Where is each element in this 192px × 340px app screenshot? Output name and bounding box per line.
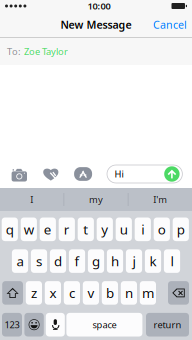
staticText: Zoe Taylor [24, 45, 68, 57]
button[interactable]: q [2, 217, 18, 241]
button[interactable]: g [88, 249, 104, 273]
button[interactable]: i [135, 217, 151, 241]
button[interactable]: t [78, 217, 94, 241]
button[interactable]: u [116, 217, 132, 241]
button[interactable]: x [45, 281, 61, 305]
staticText: To: [7, 45, 21, 57]
staticText: my [89, 193, 103, 206]
button[interactable]: o [154, 217, 170, 241]
staticText: g [92, 252, 100, 270]
button[interactable]: y [97, 217, 113, 241]
staticText: m [142, 284, 154, 302]
button[interactable]: space [66, 313, 142, 336]
button[interactable]: w [21, 217, 37, 241]
button[interactable]: a [12, 249, 28, 273]
button[interactable]: 123 [2, 313, 22, 336]
button[interactable]: Cancel [148, 12, 192, 37]
staticText: 123 [4, 318, 19, 331]
button[interactable]: s [31, 249, 47, 273]
staticText: c [69, 284, 75, 302]
staticText: Hi [114, 168, 123, 180]
button[interactable]: j [126, 249, 142, 273]
button[interactable]: b [102, 281, 118, 305]
button[interactable]: Emoji [24, 313, 44, 336]
staticText: v [87, 284, 94, 302]
button[interactable]: v [83, 281, 99, 305]
staticText: f [74, 252, 79, 270]
button[interactable]: Shift [2, 281, 23, 305]
staticText: z [31, 284, 37, 302]
button[interactable]: iMessage apps [67, 161, 100, 187]
button[interactable]: m [140, 281, 156, 305]
staticText: w [24, 220, 34, 238]
staticText: k [149, 252, 156, 270]
staticText: i [141, 220, 144, 238]
staticText: 10:00 [87, 0, 110, 12]
staticText: Cancel [153, 17, 187, 32]
button[interactable]: h [107, 249, 123, 273]
staticText: l [170, 252, 173, 270]
staticText: h [111, 252, 119, 270]
button[interactable]: I [0, 188, 63, 211]
staticText: I'm [153, 193, 167, 206]
staticText: q [6, 220, 14, 238]
button[interactable]: return [146, 313, 189, 336]
button[interactable]: Digital Touch [35, 161, 67, 187]
button[interactable]: e [40, 217, 56, 241]
staticText: b [106, 284, 114, 302]
staticText: r [64, 220, 70, 238]
button[interactable]: z [26, 281, 42, 305]
button[interactable]: n [121, 281, 137, 305]
staticText: y [101, 220, 108, 238]
staticText: j [132, 252, 135, 270]
staticText: a [16, 252, 23, 270]
staticText: space [92, 318, 116, 331]
button[interactable]: Take photo [4, 161, 35, 187]
button[interactable]: I'm [128, 188, 192, 211]
button[interactable]: r [59, 217, 75, 241]
button[interactable]: my [64, 188, 128, 211]
button[interactable]: f [69, 249, 85, 273]
button[interactable]: p [173, 217, 189, 241]
button[interactable]: d [50, 249, 66, 273]
staticText: t [83, 220, 88, 238]
staticText: return [153, 318, 181, 331]
staticText: e [44, 220, 52, 238]
button[interactable]: Delete [168, 281, 189, 305]
button[interactable]: Dictation [46, 313, 65, 336]
button[interactable]: c [64, 281, 80, 305]
staticText: o [158, 220, 166, 238]
button[interactable]: Send [164, 166, 180, 182]
staticText: x [49, 284, 56, 302]
staticText: d [54, 252, 62, 270]
staticText: n [125, 284, 133, 302]
staticText: I [30, 193, 33, 206]
button[interactable]: k [145, 249, 161, 273]
staticText: u [120, 220, 128, 238]
staticText: p [177, 220, 185, 238]
staticText: New Message [60, 17, 131, 32]
button[interactable]: l [164, 249, 180, 273]
staticText: s [36, 252, 42, 270]
